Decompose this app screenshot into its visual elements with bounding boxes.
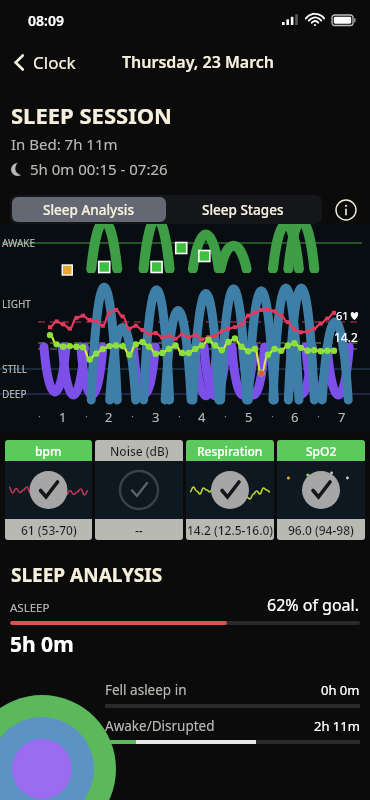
staticText: 0h 0m xyxy=(321,681,360,699)
button[interactable]: SpO2 xyxy=(277,440,365,540)
button[interactable]: Fell asleep in xyxy=(105,681,360,708)
staticText: In Bed: 7h 11m xyxy=(11,134,118,154)
staticText: · xyxy=(85,408,88,423)
staticText: 2 xyxy=(105,408,113,426)
staticText: · xyxy=(317,408,320,423)
staticText: 96.0 (94-98) xyxy=(288,522,354,538)
staticText: 61 (53-70) xyxy=(21,522,77,538)
staticText: ASLEEP xyxy=(10,600,50,616)
staticText: 7 xyxy=(338,408,346,426)
staticText: LIGHT xyxy=(2,297,31,311)
staticText: 4 xyxy=(198,408,206,426)
staticText: · xyxy=(131,408,134,423)
button[interactable]: Noise (dB) xyxy=(95,440,183,540)
staticText: STILL xyxy=(2,362,27,376)
staticText: AWAKE xyxy=(2,236,36,250)
button[interactable]: Awake/Disrupted xyxy=(105,717,360,744)
staticText: Sleep Analysis xyxy=(43,201,135,219)
staticText: 2h 11m xyxy=(314,717,360,735)
staticText: Clock xyxy=(33,51,76,74)
staticText: 14.2 xyxy=(334,329,358,345)
staticText: Awake/Disrupted xyxy=(105,717,215,735)
staticText: 3 xyxy=(152,408,160,426)
button[interactable]: bpm xyxy=(5,440,92,540)
staticText: SLEEP SESSION xyxy=(11,100,172,130)
staticText: · xyxy=(178,408,181,423)
staticText: Sleep Stages xyxy=(202,201,284,219)
staticText: 62% of goal. xyxy=(267,594,360,616)
staticText: · xyxy=(224,408,227,423)
staticText: 6 xyxy=(291,408,299,426)
staticText: 61 xyxy=(336,308,349,323)
staticText: · xyxy=(38,408,41,423)
staticText: 1 xyxy=(59,408,67,426)
staticText: Fell asleep in xyxy=(105,681,187,699)
staticText: Thursday, 23 March xyxy=(122,51,275,73)
staticText: 14.2 (12.5-16.0) xyxy=(187,522,274,538)
staticText: SpO2 xyxy=(306,443,337,459)
button[interactable]: Sleep Analysis xyxy=(12,197,166,222)
staticText: Respiration xyxy=(197,443,263,459)
staticText: SLEEP ANALYSIS xyxy=(11,562,163,588)
button[interactable]: Respiration xyxy=(186,440,274,540)
staticText: Noise (dB) xyxy=(110,443,169,459)
staticText: bpm xyxy=(35,443,62,459)
staticText: 08:09 xyxy=(28,11,64,30)
button[interactable]: Info xyxy=(332,196,360,224)
staticText: 5h 0m 00:15 - 07:26 xyxy=(30,159,168,179)
staticText: DEEP xyxy=(2,387,27,401)
staticText: 5 xyxy=(245,408,253,426)
staticText: -- xyxy=(135,522,143,538)
staticText: 5h 0m xyxy=(10,630,74,659)
button[interactable]: Clock xyxy=(8,47,80,78)
staticText: · xyxy=(271,408,274,423)
button[interactable]: Sleep Stages xyxy=(166,197,320,222)
